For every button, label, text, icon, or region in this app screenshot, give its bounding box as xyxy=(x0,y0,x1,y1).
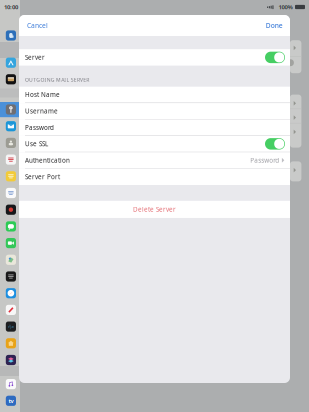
staticText: 100% xyxy=(278,3,292,11)
button[interactable]: Username xyxy=(19,103,290,119)
staticText: Done xyxy=(266,21,283,30)
button[interactable]: Delete Server xyxy=(19,201,290,218)
button[interactable]: Host Name xyxy=(19,87,290,103)
staticText: tv xyxy=(8,397,13,405)
button[interactable]: Authentication xyxy=(19,152,290,169)
staticText: Cancel xyxy=(27,21,48,30)
staticText: Use SSL xyxy=(25,140,48,148)
staticText: Password xyxy=(250,156,279,164)
button[interactable]: Server Port xyxy=(19,169,290,185)
staticText: Delete Server xyxy=(133,205,176,214)
staticText: Host Name xyxy=(25,90,60,99)
staticText: Username xyxy=(25,107,58,115)
staticText: 10:00 xyxy=(4,3,18,11)
staticText: Server xyxy=(25,53,45,62)
button[interactable]: Server xyxy=(19,49,290,66)
button[interactable]: Password xyxy=(19,119,290,136)
button[interactable]: Done xyxy=(258,15,290,36)
staticText: OUTGOING MAIL SERVER xyxy=(25,76,89,83)
button[interactable]: Use SSL xyxy=(19,136,290,152)
staticText: Password xyxy=(25,123,54,132)
staticText: Server Port xyxy=(25,173,60,181)
staticText: Authentication xyxy=(25,156,70,164)
button[interactable]: Cancel xyxy=(19,15,56,36)
